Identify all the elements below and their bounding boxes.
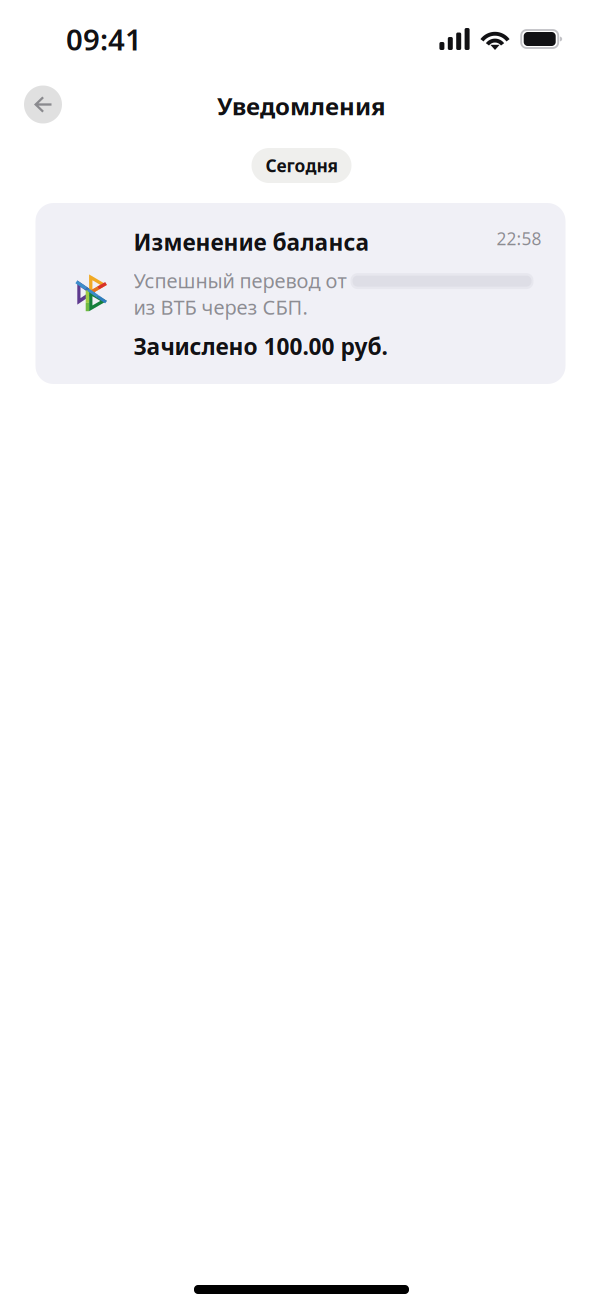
- button[interactable]: Изменение баланса: [36, 203, 566, 384]
- staticText: из ВТБ через СБП.: [133, 294, 307, 320]
- button[interactable]: Назад: [24, 85, 62, 126]
- staticText: 09:41: [66, 19, 142, 58]
- staticText: Уведомления: [217, 90, 386, 122]
- staticText: Сегодня: [265, 154, 337, 177]
- staticText: 22:58: [496, 227, 541, 250]
- staticText: Изменение баланса: [133, 227, 369, 257]
- staticText: Зачислено 100.00 руб.: [133, 331, 387, 361]
- staticText: Успешный перевод от: [133, 267, 346, 294]
